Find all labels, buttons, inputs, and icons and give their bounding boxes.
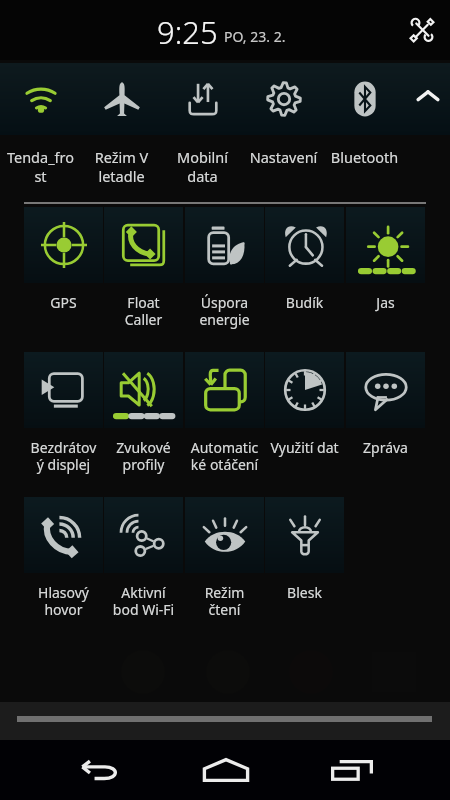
staticText: Zvukové profily xyxy=(104,438,183,474)
staticText: PO, 23. 2. xyxy=(224,27,286,46)
staticText: GPS xyxy=(24,293,103,312)
button[interactable] xyxy=(243,63,324,135)
button[interactable] xyxy=(104,207,183,283)
staticText: Automatic ké otáčení xyxy=(185,438,264,474)
staticText: Úspora energie xyxy=(185,293,264,329)
button[interactable] xyxy=(265,207,344,283)
button[interactable] xyxy=(265,497,344,573)
button[interactable] xyxy=(185,352,264,428)
button[interactable] xyxy=(185,497,264,573)
staticText: Float Caller xyxy=(104,293,183,329)
staticText: Jas xyxy=(346,293,425,312)
button[interactable] xyxy=(24,207,103,283)
button[interactable] xyxy=(24,352,103,428)
staticText: Blesk xyxy=(265,583,344,602)
button[interactable] xyxy=(162,63,243,135)
button[interactable] xyxy=(346,352,425,428)
button[interactable] xyxy=(265,352,344,428)
button[interactable]: Settings xyxy=(402,10,442,50)
staticText: Budík xyxy=(265,293,344,312)
staticText: Nastavení xyxy=(243,147,324,167)
button[interactable] xyxy=(324,63,405,135)
staticText: Hlasový hovor xyxy=(24,583,103,619)
staticText: Aktivní bod Wi-Fi xyxy=(104,583,183,619)
staticText: Režim čtení xyxy=(185,583,264,619)
staticText: Tenda_fro st xyxy=(0,147,81,186)
button[interactable]: Recents xyxy=(326,746,377,794)
button[interactable] xyxy=(346,207,425,283)
staticText: Mobilní data xyxy=(162,147,243,186)
staticText: Bezdrátov ý displej xyxy=(24,438,103,474)
button[interactable] xyxy=(104,352,183,428)
staticText: Zpráva xyxy=(346,438,425,457)
button[interactable] xyxy=(81,63,162,135)
button[interactable]: Collapse quick settings xyxy=(405,63,450,135)
staticText: Využití dat xyxy=(265,438,344,457)
button[interactable] xyxy=(185,207,264,283)
button[interactable]: Home xyxy=(200,746,251,794)
button[interactable]: Back xyxy=(74,746,125,794)
button[interactable] xyxy=(104,497,183,573)
button[interactable] xyxy=(24,497,103,573)
staticText: Režim V letadle xyxy=(81,147,162,186)
staticText: Bluetooth xyxy=(324,147,405,167)
button[interactable] xyxy=(0,63,81,135)
button[interactable]: Drag handle xyxy=(0,702,450,740)
staticText: 9:25 xyxy=(157,11,218,53)
